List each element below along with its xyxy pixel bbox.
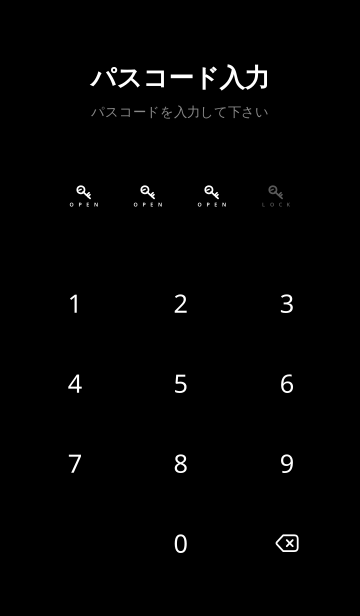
staticText: 5 [173, 366, 187, 400]
staticText: OPEN [70, 201, 98, 208]
button[interactable]: 5 [127, 343, 233, 423]
button[interactable]: OPEN [183, 176, 241, 212]
staticText: LOCK [262, 201, 289, 208]
button[interactable]: 3 [234, 263, 340, 343]
staticText: パスコードを入力して下さい [91, 104, 269, 120]
staticText: 7 [68, 446, 82, 480]
button[interactable]: 0 [127, 503, 233, 583]
button[interactable]: Delete [234, 503, 340, 583]
staticText: 1 [68, 286, 82, 320]
button[interactable]: 9 [234, 423, 340, 503]
staticText: 0 [173, 526, 187, 560]
staticText: OPEN [134, 201, 162, 208]
button[interactable]: 1 [22, 263, 128, 343]
button[interactable]: OPEN [55, 176, 113, 212]
staticText: パスコード入力 [90, 62, 269, 93]
button[interactable]: 2 [127, 263, 233, 343]
staticText: 2 [173, 286, 187, 320]
button[interactable]: 7 [22, 423, 128, 503]
button[interactable]: 6 [234, 343, 340, 423]
staticText: 4 [68, 366, 82, 400]
button[interactable]: 4 [22, 343, 128, 423]
button[interactable]: 8 [127, 423, 233, 503]
button[interactable]: LOCK [247, 176, 305, 212]
staticText: 8 [173, 446, 187, 480]
staticText: OPEN [198, 201, 226, 208]
staticText: 6 [280, 366, 294, 400]
button[interactable]: OPEN [119, 176, 177, 212]
staticText: 3 [280, 286, 294, 320]
staticText: 9 [280, 446, 294, 480]
